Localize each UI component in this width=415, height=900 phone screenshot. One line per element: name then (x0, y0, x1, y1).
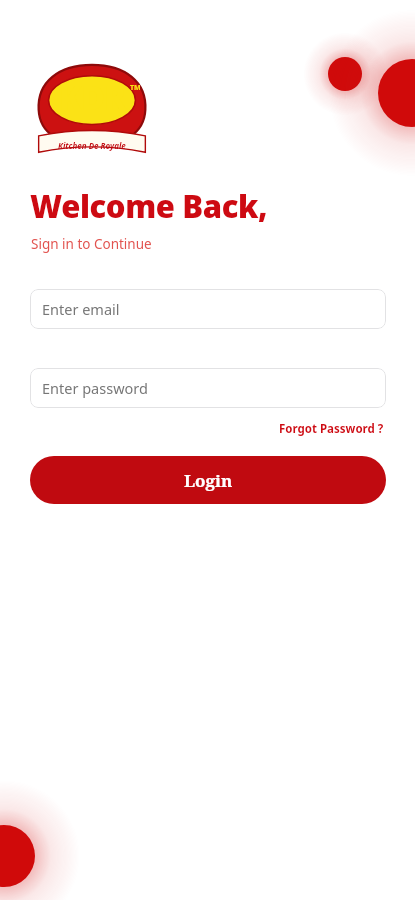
button[interactable]: Login (30, 456, 386, 504)
staticText: Kitchen De Royale (58, 140, 126, 151)
button[interactable]: Enter password (30, 368, 386, 408)
staticText: Enter password (42, 378, 148, 398)
button[interactable]: Forgot Password ? (277, 419, 386, 439)
staticText: Forgot Password ? (279, 421, 384, 437)
staticText: Sign in to Continue (31, 235, 152, 253)
staticText: Login (184, 469, 233, 492)
staticText: TM (130, 83, 141, 93)
staticText: KDR (59, 75, 126, 120)
button[interactable]: Enter email (30, 289, 386, 329)
staticText: Enter email (42, 299, 120, 319)
staticText: Welcome Back, (30, 185, 268, 227)
